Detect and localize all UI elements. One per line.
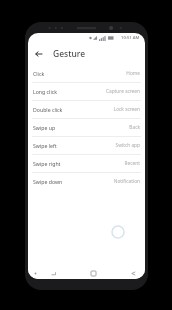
staticText: Swipe left [33, 142, 115, 149]
staticText: Back [129, 124, 140, 131]
staticText: Double click [33, 106, 113, 113]
staticText: Capture screen [105, 88, 140, 95]
staticText: Switch app [115, 142, 140, 149]
button[interactable]: Home [87, 267, 99, 279]
button[interactable]: Swipe left [28, 137, 145, 154]
staticText: Home [126, 70, 140, 77]
button[interactable]: Recents [47, 267, 59, 279]
staticText: Swipe down [33, 178, 113, 185]
button[interactable]: Click [28, 65, 145, 82]
button[interactable]: Swipe down [28, 173, 145, 190]
staticText: 10:51 AM [121, 35, 140, 41]
staticText: Recent [124, 160, 140, 167]
staticText: Click [33, 70, 126, 77]
button[interactable]: Back [127, 267, 139, 279]
button[interactable]: Long click [28, 83, 145, 100]
button[interactable]: Back [31, 46, 47, 62]
staticText: Lock screen [113, 106, 140, 113]
button[interactable]: Keyboard indicator [31, 269, 39, 277]
button[interactable]: Swipe up [28, 119, 145, 136]
staticText: Gesture [53, 48, 86, 60]
staticText: Long click [33, 88, 105, 95]
staticText: Notification [113, 178, 140, 185]
staticText: Swipe right [33, 160, 124, 167]
button[interactable]: Swipe right [28, 155, 145, 172]
staticText: Swipe up [33, 124, 129, 131]
button[interactable]: Double click [28, 101, 145, 118]
